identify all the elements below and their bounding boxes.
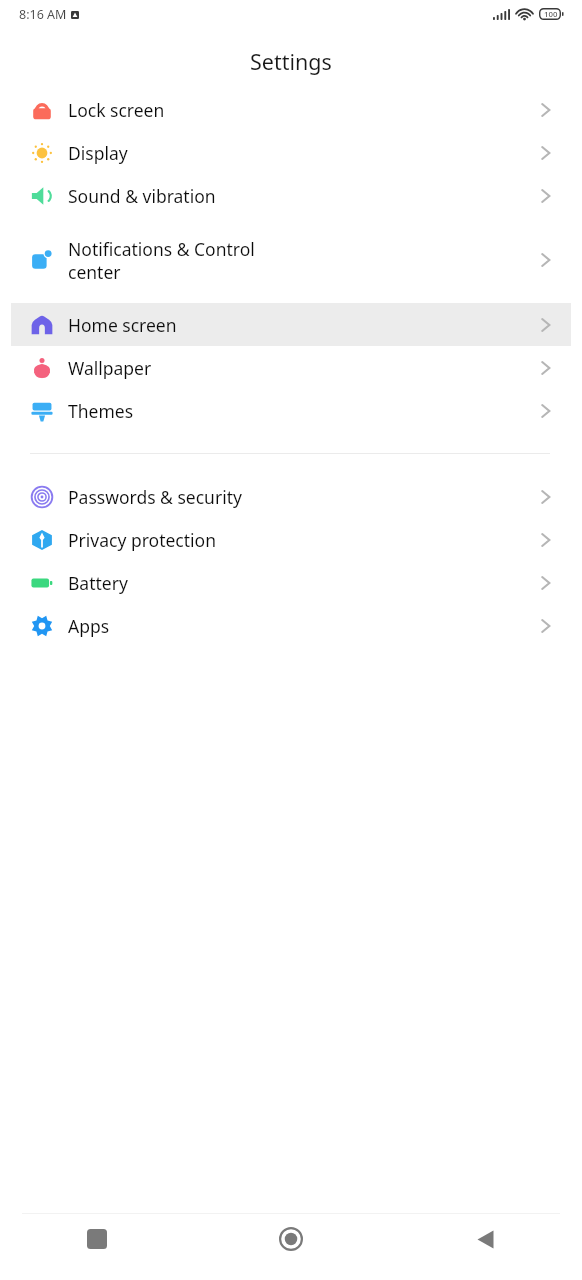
button[interactable]: Wallpaper xyxy=(0,346,582,389)
button[interactable]: Display xyxy=(0,131,582,174)
staticText: Passwords & security xyxy=(68,485,540,509)
staticText: Home screen xyxy=(68,313,540,337)
button[interactable]: Apps xyxy=(0,604,582,647)
staticText: Sound & vibration xyxy=(68,184,540,208)
button[interactable]: Back xyxy=(388,1214,582,1280)
button[interactable]: Notifications & Control center xyxy=(0,217,582,303)
staticText: Wallpaper xyxy=(68,356,540,380)
staticText: Settings xyxy=(250,47,332,76)
staticText: Notifications & Control center xyxy=(68,237,540,284)
staticText: Privacy protection xyxy=(68,528,540,552)
staticText: 8:16 AM xyxy=(19,6,67,23)
staticText: Battery xyxy=(68,571,540,595)
button[interactable]: Lock screen xyxy=(0,88,582,131)
button[interactable]: Home xyxy=(194,1214,388,1280)
staticText: Themes xyxy=(68,399,540,423)
button[interactable]: Themes xyxy=(0,389,582,432)
staticText: Display xyxy=(68,141,540,165)
button[interactable]: Passwords & security xyxy=(0,475,582,518)
staticText: Lock screen xyxy=(68,98,540,122)
button[interactable]: Home screen xyxy=(11,303,571,346)
staticText: 100 xyxy=(544,9,558,20)
button[interactable]: Sound & vibration xyxy=(0,174,582,217)
button[interactable]: Recent apps xyxy=(0,1214,194,1280)
button[interactable]: Battery xyxy=(0,561,582,604)
staticText: Apps xyxy=(68,614,540,638)
button[interactable]: Privacy protection xyxy=(0,518,582,561)
